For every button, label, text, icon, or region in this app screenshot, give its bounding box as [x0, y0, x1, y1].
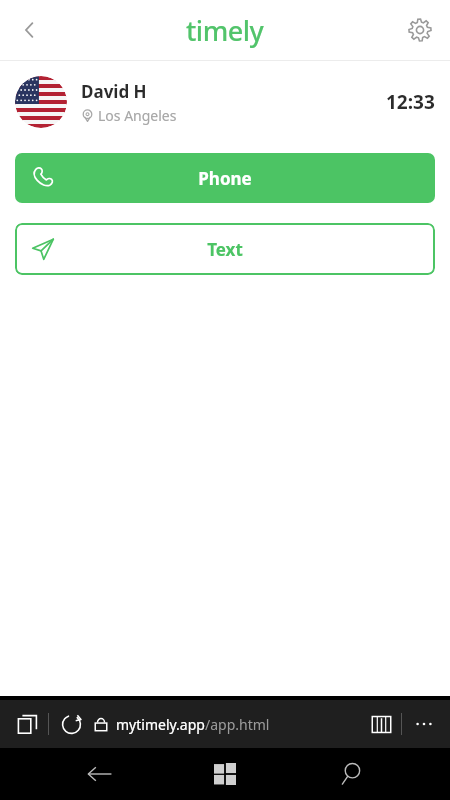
button[interactable]: David H	[0, 61, 450, 143]
staticText: mytimely.app	[116, 715, 205, 734]
staticText: Phone	[198, 167, 252, 190]
button[interactable]: More options	[402, 702, 446, 746]
button[interactable]: Tabs	[8, 704, 48, 744]
button[interactable]: Back	[8, 8, 52, 52]
button[interactable]: Start	[199, 748, 251, 800]
staticText: timely	[186, 12, 264, 49]
button[interactable]: mytimely.app	[116, 715, 270, 734]
staticText: David H	[81, 80, 147, 103]
button[interactable]: Text	[15, 223, 435, 275]
staticText: Los Angeles	[98, 106, 177, 125]
staticText: /app.html	[205, 715, 270, 734]
button[interactable]: Reload	[49, 702, 93, 746]
staticText: Text	[207, 238, 243, 261]
button[interactable]: Search	[325, 748, 377, 800]
button[interactable]: Settings	[398, 8, 442, 52]
button[interactable]: Back	[74, 748, 126, 800]
button[interactable]: Reading view	[361, 704, 401, 744]
staticText: 12:33	[386, 89, 435, 115]
button[interactable]: Phone	[15, 153, 435, 203]
